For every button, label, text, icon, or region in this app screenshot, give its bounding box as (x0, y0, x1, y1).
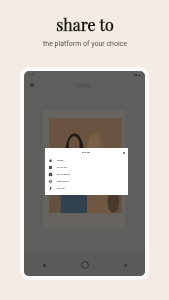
button[interactable]: INSTAGRAM (45, 171, 128, 178)
button[interactable]: Back (105, 254, 145, 276)
staticText: EXPORT (82, 151, 91, 154)
button[interactable]: SNAPCHAT (45, 178, 128, 185)
staticText: SNAPCHAT (57, 180, 70, 183)
button[interactable]: PLAYLIST (45, 164, 128, 171)
button[interactable]: Menu (27, 80, 37, 90)
staticText: starkly (76, 82, 92, 89)
button[interactable]: TIKTOK (45, 185, 128, 192)
button[interactable]: Home (65, 254, 105, 276)
staticText: TIKTOK (57, 187, 65, 190)
staticText: INSTAGRAM (57, 173, 71, 176)
button[interactable]: VIDEO (45, 157, 128, 164)
button[interactable]: Recents (24, 254, 65, 276)
staticText: 9:41 (28, 73, 35, 77)
staticText: the platform of your choice (43, 40, 127, 48)
staticText: VIDEO (57, 159, 64, 162)
staticText: PLAYLIST (57, 166, 68, 169)
button[interactable]: Close (120, 149, 128, 157)
staticText: share to (56, 14, 114, 35)
